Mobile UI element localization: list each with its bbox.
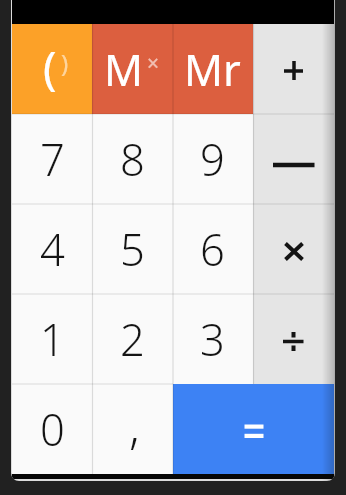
button[interactable]: 2 <box>92 294 172 384</box>
staticText: 7 <box>40 129 65 188</box>
staticText: ( <box>43 37 57 98</box>
button[interactable] <box>253 294 334 384</box>
button[interactable]: , <box>92 384 173 474</box>
button[interactable] <box>173 384 334 474</box>
staticText: Mr <box>184 40 241 99</box>
staticText: × <box>147 49 160 78</box>
staticText: M <box>104 40 144 99</box>
button[interactable]: 7 <box>12 114 92 204</box>
staticText: ) <box>61 46 69 79</box>
button[interactable]: 5 <box>92 204 172 294</box>
staticText: 8 <box>120 129 145 188</box>
button[interactable] <box>253 24 334 114</box>
button[interactable]: ( <box>12 24 92 114</box>
staticText: 6 <box>200 219 225 278</box>
button[interactable]: 0 <box>12 384 92 474</box>
staticText: 9 <box>200 129 225 188</box>
button[interactable] <box>253 204 334 294</box>
button[interactable] <box>253 114 334 204</box>
staticText: 2 <box>120 309 145 368</box>
button[interactable]: 6 <box>172 204 253 294</box>
button[interactable]: 8 <box>92 114 172 204</box>
button[interactable]: Mr <box>172 24 253 114</box>
staticText: 1 <box>40 309 65 368</box>
staticText: 5 <box>120 219 145 278</box>
staticText: 3 <box>200 309 225 368</box>
button[interactable]: 9 <box>172 114 253 204</box>
button[interactable]: 4 <box>12 204 92 294</box>
button[interactable]: M <box>92 24 172 114</box>
staticText: 4 <box>40 219 65 278</box>
staticText: , <box>129 393 140 458</box>
button[interactable]: 3 <box>172 294 253 384</box>
staticText: 0 <box>40 399 65 458</box>
button[interactable]: 1 <box>12 294 92 384</box>
